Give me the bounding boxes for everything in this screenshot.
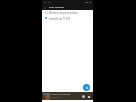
staticText: Wireless Imports auditcr — [49, 11, 79, 14]
button[interactable]: Stop — [86, 94, 91, 99]
button[interactable]: seedufl set 11399 — [42, 15, 93, 21]
staticText: seedufl set 11399 — [49, 17, 70, 20]
button[interactable]: Play — [81, 94, 86, 99]
button[interactable]: Wireless Imports auditcr — [42, 10, 93, 15]
staticText: Tap to play — [51, 96, 61, 99]
staticText: Stream the Wire now — [51, 93, 71, 96]
button[interactable]: Navigate back — [43, 6, 46, 9]
button[interactable]: Add new item — [83, 84, 90, 91]
staticText: Scan OutPrint — [49, 6, 65, 9]
